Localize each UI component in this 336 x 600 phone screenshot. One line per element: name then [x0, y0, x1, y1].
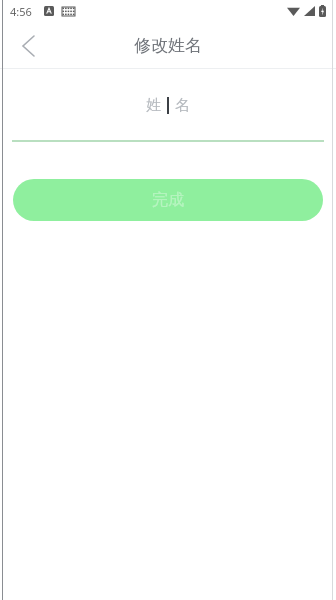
staticText: 姓	[146, 96, 161, 115]
staticText: 完成	[152, 190, 184, 210]
staticText: 4:56	[10, 4, 32, 19]
staticText: 修改姓名	[134, 35, 202, 56]
button[interactable]: Back	[6, 24, 50, 68]
button[interactable]: 姓	[0, 70, 336, 140]
button[interactable]: 完成	[13, 179, 323, 221]
staticText: 名	[175, 96, 190, 115]
